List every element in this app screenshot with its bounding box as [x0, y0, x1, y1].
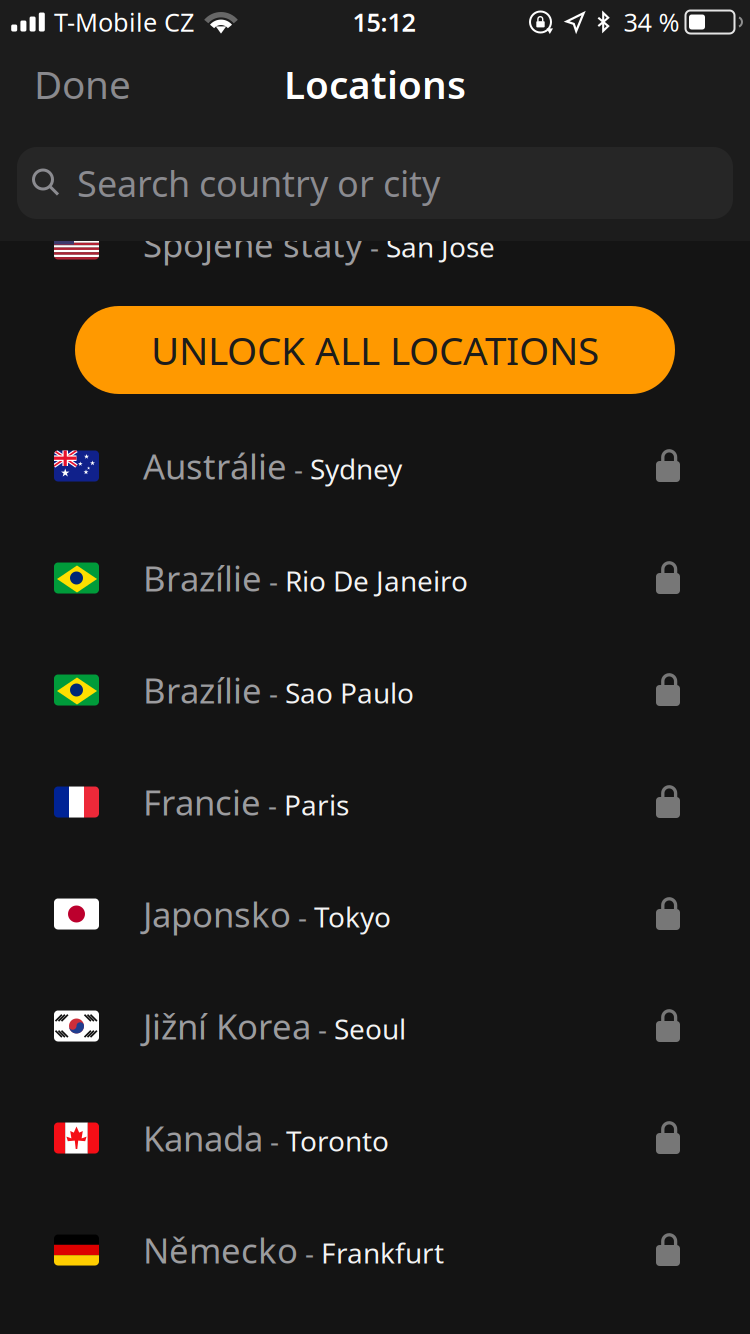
staticText: Tokyo [314, 898, 391, 935]
staticText: - [263, 1122, 286, 1159]
button[interactable]: Done [0, 46, 131, 122]
staticText: Francie [143, 779, 261, 825]
staticText: 15:12 [352, 5, 415, 39]
staticText: - [287, 450, 310, 487]
button[interactable]: Austrálie [0, 410, 750, 522]
staticText: San Jose [386, 228, 495, 265]
staticText: T-Mobile CZ [54, 5, 194, 39]
staticText: - [363, 228, 386, 265]
staticText: Japonsko [143, 891, 291, 937]
staticText: UNLOCK ALL LOCATIONS [151, 324, 599, 376]
staticText: Paris [284, 786, 349, 823]
staticText: Brazílie [143, 555, 262, 601]
button[interactable]: Kanada [0, 1082, 750, 1194]
staticText: Toronto [286, 1122, 389, 1159]
staticText: 34 % [623, 5, 679, 39]
staticText: Brazílie [143, 667, 262, 713]
staticText: Austrálie [143, 443, 287, 489]
button[interactable]: Japonsko [0, 858, 750, 970]
staticText: Seoul [334, 1010, 406, 1047]
staticText: Frankfurt [321, 1234, 444, 1271]
staticText: - [262, 562, 285, 599]
staticText: - [298, 1234, 321, 1271]
staticText: Locations [284, 58, 466, 110]
button[interactable]: UNLOCK ALL LOCATIONS [75, 306, 675, 394]
staticText: Rio De Janeiro [285, 562, 468, 599]
button[interactable]: Brazílie [0, 634, 750, 746]
staticText: - [311, 1010, 334, 1047]
staticText: Sydney [310, 450, 402, 487]
staticText: Search country or city [77, 159, 440, 207]
staticText: Done [34, 58, 131, 110]
staticText: Jižní Korea [143, 1003, 311, 1049]
staticText: - [262, 674, 285, 711]
staticText: - [261, 786, 284, 823]
staticText: Kanada [143, 1115, 263, 1161]
button[interactable]: Německo [0, 1194, 750, 1306]
staticText: Spojené státy [143, 221, 363, 267]
staticText: Sao Paulo [285, 674, 414, 711]
staticText: - [291, 898, 314, 935]
button[interactable]: Jižní Korea [0, 970, 750, 1082]
staticText: Německo [143, 1227, 298, 1273]
button[interactable]: Francie [0, 746, 750, 858]
button[interactable]: Brazílie [0, 522, 750, 634]
